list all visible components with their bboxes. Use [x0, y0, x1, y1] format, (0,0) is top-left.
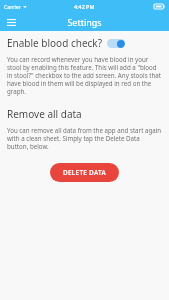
staticText: DELETE DATA: [63, 168, 106, 177]
staticText: You can remove all data from the app and…: [7, 126, 162, 150]
staticText: Settings: [67, 16, 102, 28]
button[interactable]: Enable blood check?: [7, 35, 162, 51]
button[interactable]: Open navigation menu: [4, 15, 18, 29]
staticText: You can record whenever you have blood i…: [7, 55, 162, 95]
button[interactable]: DELETE DATA: [50, 163, 119, 182]
staticText: Enable blood check?: [7, 36, 102, 50]
staticText: 4:42 PM: [74, 3, 95, 10]
staticText: Remove all data: [7, 107, 82, 121]
staticText: Carrier: [4, 3, 21, 10]
